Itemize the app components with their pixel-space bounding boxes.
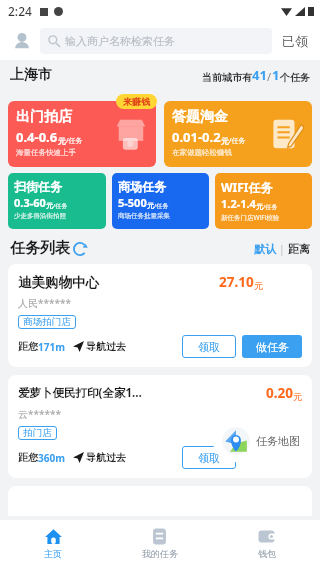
button[interactable]: Profile	[10, 29, 34, 53]
staticText: 爱萝卜便民打印(全家1218-云南中路店)	[18, 385, 142, 401]
staticText: 答题淘金	[172, 108, 228, 126]
button[interactable]: 迪美购物中心	[8, 264, 312, 367]
staticText: 2:24	[8, 3, 32, 19]
staticText: /任务	[53, 202, 68, 210]
staticText: 元	[147, 201, 154, 210]
button[interactable]: 任务地图	[213, 420, 312, 462]
button[interactable]: 扫街任务	[8, 173, 106, 229]
button[interactable]: 爱萝卜便民打印(全家1218-云南中路店)	[8, 375, 312, 478]
staticText: 人民******	[18, 296, 72, 310]
staticText: 元	[46, 201, 53, 210]
staticText: 领取	[198, 340, 220, 354]
staticText: WIFI任务	[221, 179, 273, 195]
staticText: 元	[256, 202, 263, 211]
button[interactable]: 商场任务	[112, 173, 209, 229]
staticText: /任务	[66, 136, 83, 146]
staticText: 导航过去	[86, 451, 126, 464]
staticText: 商场任务批量采集	[118, 212, 170, 220]
button[interactable]: 答题淘金	[164, 101, 312, 167]
staticText: /	[267, 69, 272, 84]
staticText: 新任务门店WiFi校验	[221, 213, 280, 222]
staticText: 做任务	[256, 340, 289, 354]
staticText: 默认	[254, 242, 276, 256]
staticText: 5-500	[118, 195, 147, 210]
button[interactable]: 钱包	[213, 520, 320, 566]
staticText: 出门拍店	[16, 108, 72, 126]
staticText: 导航过去	[86, 340, 126, 353]
button[interactable]: 输入商户名称检索任务	[40, 28, 272, 54]
staticText: |	[276, 241, 288, 256]
staticText: 距离	[288, 242, 310, 256]
button[interactable]: 主页	[0, 520, 106, 566]
staticText: 元	[58, 136, 66, 146]
staticText: 0.01-0.2	[172, 128, 221, 146]
staticText: 商场拍门店	[23, 316, 71, 328]
staticText: 钱包	[258, 548, 276, 559]
button[interactable]: 我的任务	[106, 520, 213, 566]
staticText: 1	[272, 66, 280, 84]
staticText: 距您	[18, 451, 38, 464]
staticText: 我的任务	[142, 548, 178, 559]
button[interactable]: Refresh	[72, 241, 88, 257]
staticText: 少走多得沿街拍照	[14, 212, 66, 220]
staticText: /任务	[154, 202, 169, 210]
button[interactable]: 做任务	[242, 335, 302, 358]
staticText: 171m	[38, 340, 65, 354]
staticText: 27.10	[219, 273, 254, 291]
staticText: 海量任务快速上手	[16, 148, 76, 157]
staticText: 360m	[38, 451, 65, 465]
staticText: 个任务	[280, 71, 310, 84]
staticText: 扫街任务	[14, 179, 62, 194]
staticText: 拍门店	[23, 427, 52, 439]
button[interactable]: 领取	[182, 446, 236, 469]
staticText: 当前城市有	[202, 71, 252, 84]
staticText: 主页	[44, 548, 62, 559]
button[interactable]: 默认	[254, 242, 276, 256]
button[interactable]: 距离	[288, 242, 310, 256]
staticText: 来赚钱	[123, 96, 150, 107]
staticText: 已领	[282, 33, 308, 49]
staticText: 商场任务	[118, 179, 166, 194]
button[interactable]: 出门拍店	[8, 101, 156, 167]
staticText: 1.2-1.4	[221, 196, 256, 211]
staticText: 距您	[18, 340, 38, 353]
staticText: /任务	[229, 136, 246, 146]
staticText: 0.3-60	[14, 195, 46, 210]
button[interactable]: 导航过去	[73, 340, 126, 353]
staticText: 任务列表	[10, 239, 70, 258]
button[interactable]: 导航过去	[73, 451, 126, 464]
staticText: 元	[293, 391, 302, 402]
staticText: 在家做题轻松赚钱	[172, 148, 232, 157]
button[interactable]: 领取	[182, 335, 236, 358]
button[interactable]: 已领	[280, 33, 310, 49]
button[interactable]: WIFI任务	[215, 173, 312, 229]
staticText: 41	[252, 66, 267, 84]
staticText: 0.4-0.6	[16, 128, 58, 146]
staticText: 输入商户名称检索任务	[65, 34, 175, 48]
staticText: 云******	[18, 407, 62, 421]
staticText: 领取	[198, 451, 220, 465]
staticText: /任务	[263, 203, 278, 211]
staticText: 0.20	[266, 384, 293, 402]
staticText: 元	[221, 136, 229, 146]
staticText: 上海市	[10, 66, 52, 84]
staticText: 迪美购物中心	[18, 274, 99, 291]
staticText: 元	[254, 280, 263, 291]
staticText: 任务地图	[256, 434, 300, 448]
